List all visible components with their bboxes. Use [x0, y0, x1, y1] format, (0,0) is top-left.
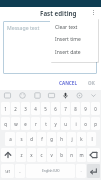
- staticText: h: [60, 136, 63, 142]
- button[interactable]: 1: [1, 102, 10, 115]
- staticText: w: [14, 121, 18, 127]
- staticText: u: [64, 121, 67, 127]
- button[interactable]: 2: [11, 102, 20, 115]
- button[interactable]: 0: [91, 102, 100, 115]
- button[interactable]: r: [31, 117, 40, 130]
- button[interactable]: GIF: [47, 91, 56, 100]
- button[interactable]: Emoji: [18, 91, 27, 100]
- button[interactable]: CANCEL: [56, 78, 80, 88]
- button[interactable]: 3: [21, 102, 30, 115]
- button[interactable]: w: [11, 117, 20, 130]
- button[interactable]: Voice input: [61, 91, 70, 100]
- button[interactable]: p: [91, 117, 100, 130]
- staticText: 2: [14, 106, 17, 112]
- staticText: t: [45, 121, 47, 127]
- staticText: 0: [94, 106, 97, 112]
- button[interactable]: l: [87, 132, 96, 146]
- staticText: Fast editing: [40, 9, 77, 17]
- staticText: .: [80, 168, 82, 174]
- staticText: Clear text: [55, 24, 78, 31]
- button[interactable]: i: [71, 117, 80, 130]
- staticText: y: [54, 121, 57, 127]
- staticText: a: [9, 136, 12, 142]
- button[interactable]: 5: [41, 102, 50, 115]
- button[interactable]: x: [27, 148, 36, 162]
- staticText: Insert time: [55, 36, 81, 43]
- staticText: CANCEL: [59, 80, 77, 86]
- button[interactable]: 4: [31, 102, 40, 115]
- staticText: English (UK): [42, 169, 60, 173]
- button[interactable]: Clear text: [50, 21, 98, 33]
- button[interactable]: More options: [88, 7, 99, 18]
- button[interactable]: a: [5, 132, 15, 146]
- button[interactable]: s: [16, 132, 26, 146]
- staticText: 1: [4, 106, 7, 112]
- button[interactable]: c: [37, 148, 46, 162]
- staticText: g: [50, 136, 53, 142]
- staticText: r: [35, 121, 37, 127]
- button[interactable]: OK: [85, 78, 98, 88]
- staticText: b: [60, 152, 63, 158]
- button[interactable]: 6: [51, 102, 60, 115]
- button[interactable]: q: [1, 117, 10, 130]
- button[interactable]: v: [47, 148, 56, 162]
- staticText: 4: [34, 106, 37, 112]
- button[interactable]: !#1: [1, 164, 14, 178]
- button[interactable]: Collapse: [89, 91, 98, 100]
- button[interactable]: ,: [15, 164, 25, 178]
- staticText: ,: [19, 168, 21, 174]
- button[interactable]: f: [37, 132, 46, 146]
- staticText: OK: [88, 80, 95, 86]
- button[interactable]: Insert time: [50, 33, 98, 46]
- staticText: l: [91, 136, 93, 142]
- staticText: 9: [84, 106, 87, 112]
- staticText: x: [30, 152, 33, 158]
- button[interactable]: g: [47, 132, 56, 146]
- button[interactable]: e: [21, 117, 30, 130]
- button[interactable]: 7: [61, 102, 70, 115]
- button[interactable]: j: [67, 132, 76, 146]
- staticText: 7: [64, 106, 67, 112]
- staticText: e: [24, 121, 27, 127]
- staticText: j: [71, 136, 73, 142]
- button[interactable]: h: [57, 132, 66, 146]
- button[interactable]: Keyboard logo: [3, 91, 12, 100]
- button[interactable]: n: [67, 148, 76, 162]
- staticText: d: [30, 136, 33, 142]
- button[interactable]: b: [57, 148, 66, 162]
- staticText: q: [4, 121, 7, 127]
- button[interactable]: y: [51, 117, 60, 130]
- staticText: m: [79, 152, 84, 158]
- button[interactable]: k: [77, 132, 86, 146]
- button[interactable]: Message text: [3, 21, 97, 74]
- button[interactable]: Stickers: [33, 91, 42, 100]
- button[interactable]: t: [41, 117, 50, 130]
- button[interactable]: Enter: [87, 164, 100, 178]
- button[interactable]: 8: [71, 102, 80, 115]
- button[interactable]: m: [77, 148, 86, 162]
- staticText: 3: [24, 106, 27, 112]
- button[interactable]: z: [16, 148, 26, 162]
- staticText: Message text: [7, 24, 40, 31]
- staticText: !#1: [5, 169, 11, 174]
- staticText: k: [80, 136, 83, 142]
- button[interactable]: Shift: [1, 148, 15, 162]
- button[interactable]: d: [27, 132, 36, 146]
- button[interactable]: Backspace: [87, 148, 100, 162]
- button[interactable]: o: [81, 117, 90, 130]
- staticText: 5: [44, 106, 47, 112]
- staticText: n: [70, 152, 73, 158]
- button[interactable]: Settings: [75, 91, 84, 100]
- staticText: f: [41, 136, 43, 142]
- button[interactable]: u: [61, 117, 70, 130]
- button[interactable]: 9: [81, 102, 90, 115]
- staticText: v: [50, 152, 53, 158]
- staticText: p: [94, 121, 97, 127]
- staticText: 6: [54, 106, 57, 112]
- staticText: c: [40, 152, 43, 158]
- button[interactable]: English (UK): [26, 164, 75, 178]
- staticText: i: [75, 121, 77, 127]
- staticText: s: [20, 136, 23, 142]
- button[interactable]: Insert date: [50, 46, 98, 59]
